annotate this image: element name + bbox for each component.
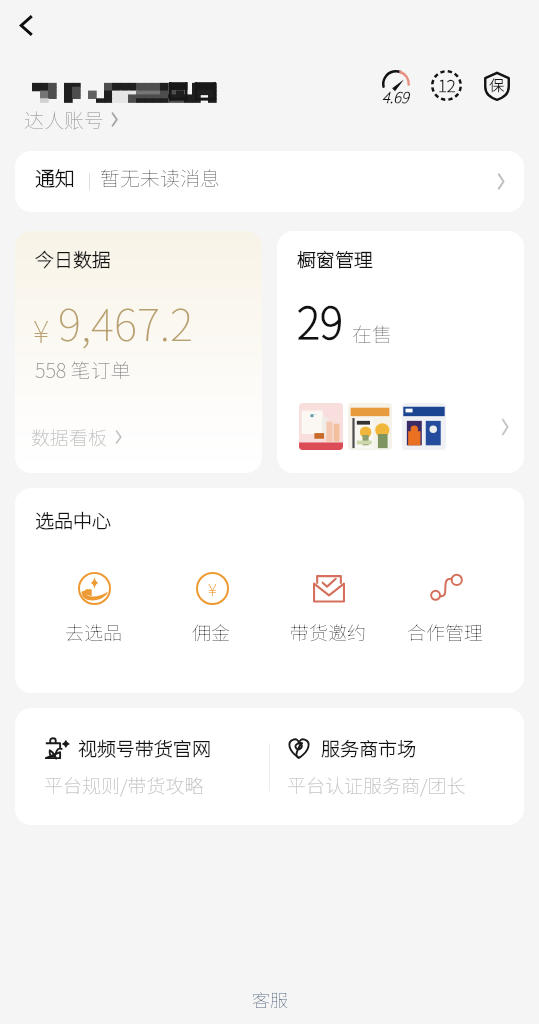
button[interactable]: ¥ xyxy=(153,571,270,646)
button[interactable]: 视频号带货官网 xyxy=(15,708,269,825)
staticText: ¥ xyxy=(33,307,50,352)
staticText: 暂无未读消息 xyxy=(100,163,220,192)
button[interactable]: 达人账号 xyxy=(22,103,121,136)
button[interactable]: 服务商市场 xyxy=(270,708,524,825)
staticText: 达人账号 xyxy=(24,105,104,134)
staticText: 通知 xyxy=(35,163,75,192)
button[interactable]: 合作管理 xyxy=(387,571,504,646)
staticText: 12 xyxy=(438,72,456,97)
staticText: 9,467.2 xyxy=(58,290,193,354)
staticText: 带货邀约 xyxy=(290,618,367,646)
button[interactable]: 去选品 xyxy=(35,571,153,646)
staticText: 服务商市场 xyxy=(321,734,417,762)
staticText: 合作管理 xyxy=(407,618,484,646)
staticText: 保 xyxy=(489,74,505,96)
button[interactable]: 通知 xyxy=(15,151,524,212)
staticText: 29 xyxy=(297,288,343,352)
staticText: 558 笔订单 xyxy=(35,355,131,384)
staticText: 选品中心 xyxy=(35,506,112,534)
staticText: 平台认证服务商/团长 xyxy=(287,771,466,799)
staticText: 去选品 xyxy=(65,618,123,646)
staticText: ¥ xyxy=(208,576,217,601)
button[interactable]: Back xyxy=(4,3,48,47)
button[interactable]: 客服 xyxy=(252,986,288,1012)
staticText: 视频号带货官网 xyxy=(78,734,212,762)
staticText: 在售 xyxy=(352,319,392,348)
staticText: 4.69 xyxy=(382,86,409,108)
button[interactable]: 橱窗管理 xyxy=(277,231,524,473)
staticText: 佣金 xyxy=(192,618,231,646)
staticText: 平台规则/带货攻略 xyxy=(44,771,204,799)
staticText: 橱窗管理 xyxy=(297,245,374,273)
staticText: 数据看板 xyxy=(31,423,108,451)
staticText: 今日数据 xyxy=(35,245,112,273)
button[interactable]: Level 12 xyxy=(431,70,462,101)
button[interactable]: Guarantee xyxy=(483,71,511,101)
button[interactable]: 带货邀约 xyxy=(270,571,387,646)
button[interactable]: 今日数据 xyxy=(15,231,262,473)
button[interactable]: 数据看板 xyxy=(29,421,125,453)
button[interactable]: Rating 4.69 xyxy=(378,69,413,108)
